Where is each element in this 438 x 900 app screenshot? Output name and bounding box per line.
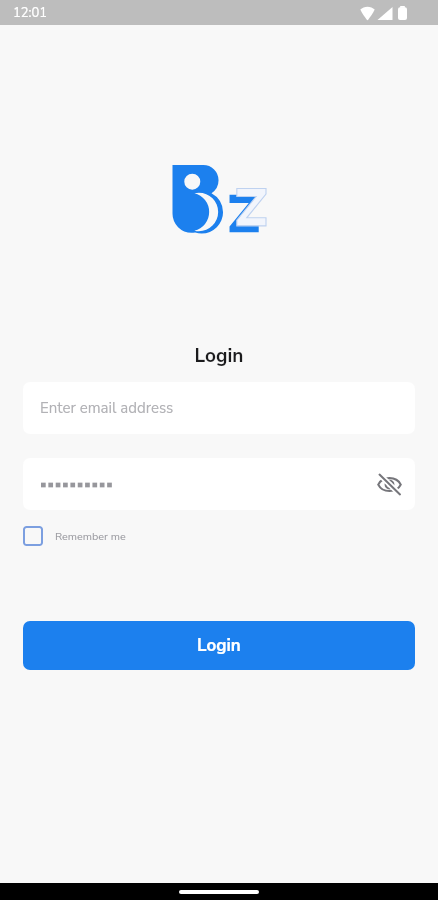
staticText: Login <box>0 343 438 369</box>
staticText: Remember me <box>55 529 126 544</box>
button[interactable]: Login <box>23 621 415 670</box>
staticText: 12:01 <box>13 4 48 22</box>
staticText: Enter email address <box>40 398 174 418</box>
button[interactable]: Remember me <box>23 526 126 546</box>
button[interactable]: Show password <box>372 467 406 501</box>
button[interactable]: Enter email address <box>23 382 415 434</box>
staticText: Login <box>197 634 241 657</box>
button[interactable]: Show password <box>23 458 415 510</box>
